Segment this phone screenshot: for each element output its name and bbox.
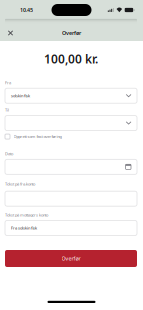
staticText: 10.45 [20, 6, 33, 14]
button[interactable]: Overfør [5, 250, 137, 267]
staticText: 100,00 kr. [44, 51, 98, 67]
staticText: solskin fisk [11, 93, 30, 98]
staticText: Overfør [61, 255, 80, 262]
staticText: Opprett som fast overføring [13, 134, 61, 139]
staticText: Fra solskin fisk [11, 225, 37, 231]
staticText: Fra [5, 80, 11, 85]
staticText: Overfør [62, 29, 81, 37]
staticText: Tekst på fra-konto [5, 181, 35, 187]
staticText: Dato [5, 151, 13, 156]
button[interactable]: Opprett som fast overføring [5, 133, 137, 140]
staticText: Tekst på mottagers konto [5, 212, 48, 217]
button[interactable]: Close [4, 26, 17, 39]
staticText: Til [5, 107, 9, 112]
